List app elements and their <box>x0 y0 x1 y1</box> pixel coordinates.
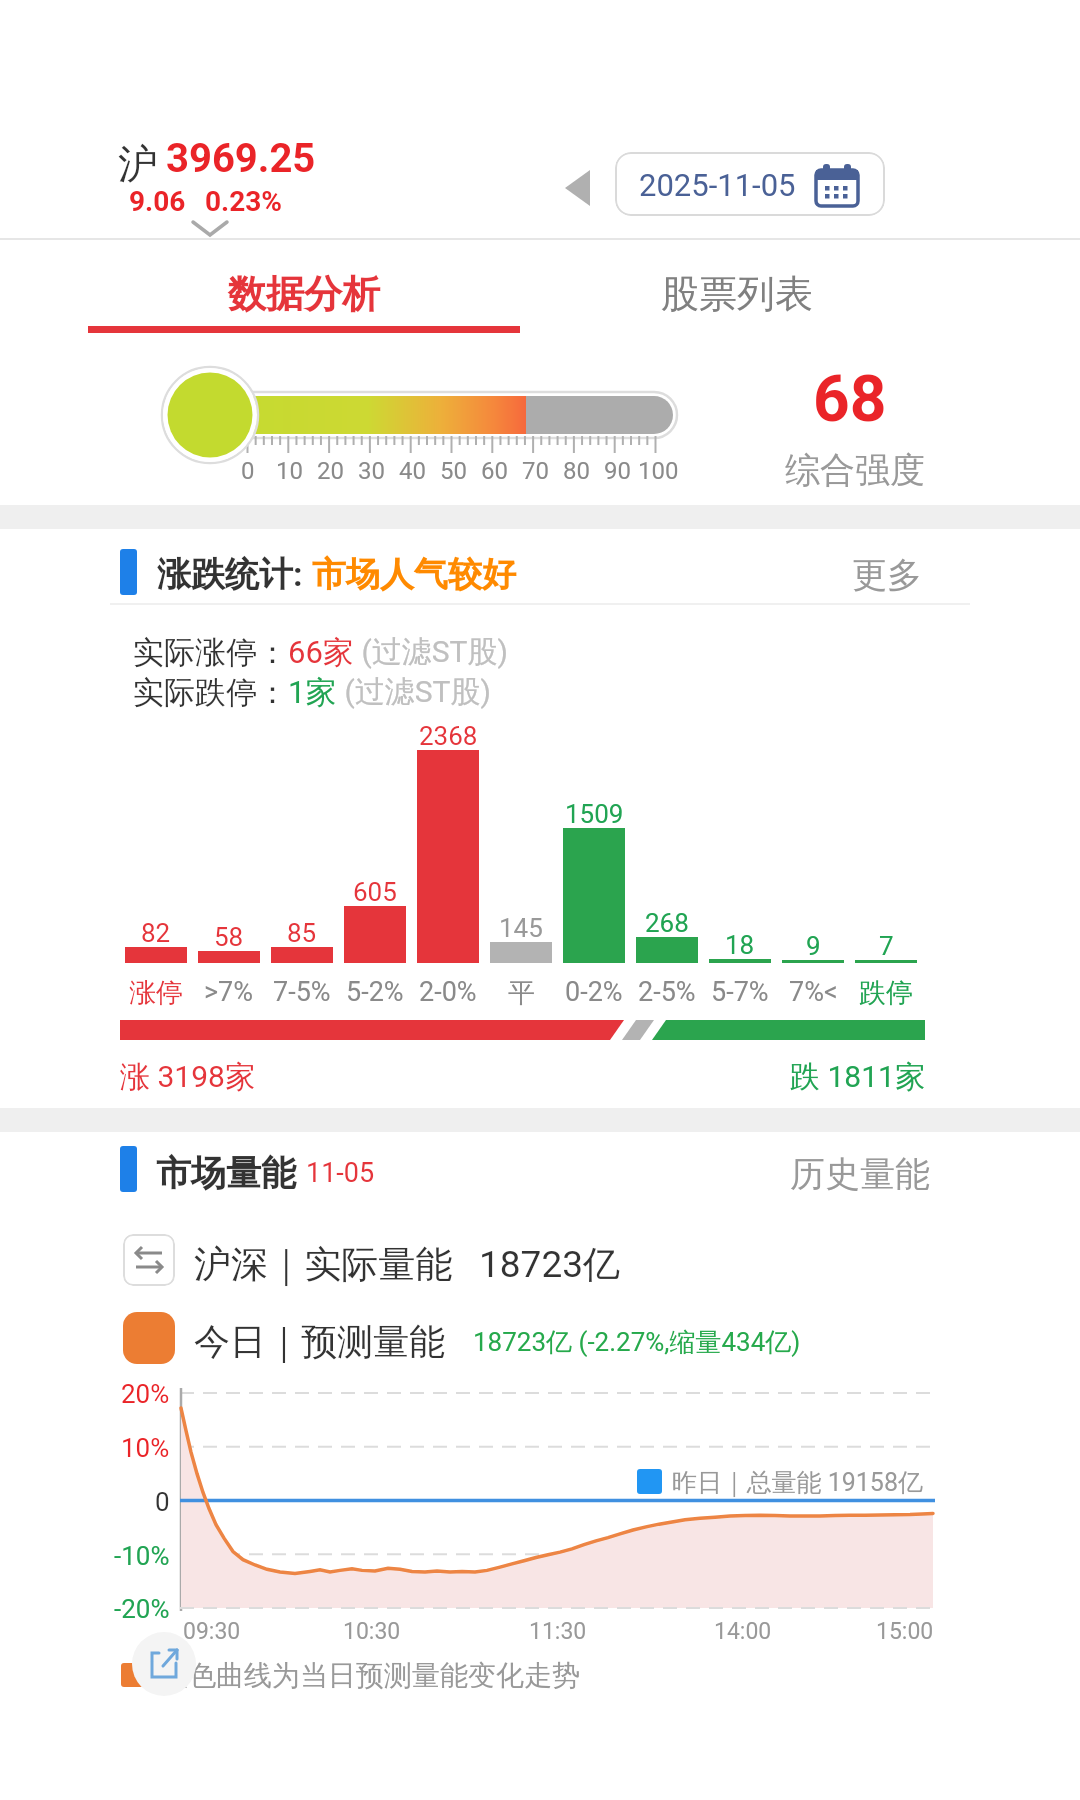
staticText: 40 <box>399 457 426 485</box>
staticText: 7-5% <box>273 976 331 1008</box>
staticText: 100 <box>638 457 679 485</box>
staticText: 60 <box>481 457 508 485</box>
staticText: 7%< <box>789 976 838 1008</box>
staticText: 橙色曲线为当日预测量能变化走势 <box>160 1658 580 1693</box>
staticText: 10 <box>276 457 303 485</box>
staticText: 沪 <box>118 139 158 189</box>
staticText: 市场人气较好 <box>312 553 516 596</box>
staticText: 涨停 <box>129 976 183 1010</box>
staticText: 实际涨停： <box>133 633 288 672</box>
staticText: 90 <box>604 457 631 485</box>
staticText: 58 <box>214 922 244 952</box>
staticText: 85 <box>287 918 317 948</box>
staticText: 5-7% <box>711 976 769 1008</box>
staticText: 80 <box>563 457 590 485</box>
staticText: 1家 <box>288 673 337 712</box>
staticText: 更多 <box>852 553 922 597</box>
button[interactable]: 股票列表 <box>540 240 1080 333</box>
staticText: 0 <box>241 457 255 485</box>
staticText: 11-05 <box>306 1157 375 1189</box>
staticText: 11:30 <box>529 1618 587 1645</box>
staticText: -20% <box>114 1594 170 1624</box>
button[interactable]: 更多 <box>820 540 960 600</box>
staticText: 18723亿 (-2.27%,缩量434亿) <box>473 1326 801 1359</box>
staticText: 3969.25 <box>166 135 316 182</box>
staticText: 68 <box>813 362 887 437</box>
staticText: 30 <box>358 457 385 485</box>
button[interactable]: 数据分析 <box>0 240 540 333</box>
staticText: 605 <box>353 877 397 907</box>
staticText: 66家 <box>288 633 354 672</box>
button[interactable] <box>552 158 604 218</box>
staticText: 综合强度 <box>785 448 925 492</box>
staticText: 市场量能 <box>156 1151 296 1195</box>
staticText: 9.06 <box>129 185 186 218</box>
staticText: 平 <box>508 976 535 1010</box>
button[interactable] <box>108 128 398 246</box>
staticText: 0.23% <box>205 185 283 218</box>
staticText: 涨 3198家 <box>120 1058 255 1096</box>
button[interactable]: 历史量能 <box>760 1140 960 1200</box>
staticText: 18723亿 <box>479 1241 620 1288</box>
staticText: 145 <box>499 913 543 943</box>
button[interactable] <box>123 1234 175 1286</box>
staticText: -10% <box>114 1541 170 1571</box>
staticText: 0-2% <box>565 976 623 1008</box>
staticText: 股票列表 <box>661 270 813 318</box>
staticText: 2025-11-05 <box>639 167 796 203</box>
button[interactable] <box>132 1632 196 1696</box>
staticText: 2368 <box>419 721 478 751</box>
staticText: >7% <box>204 976 254 1008</box>
staticText: 昨日｜总量能 19158亿 <box>672 1467 923 1498</box>
staticText: 20% <box>121 1379 170 1409</box>
staticText: 2-0% <box>419 976 477 1008</box>
staticText: 1509 <box>565 799 624 829</box>
staticText: 0 <box>155 1487 170 1517</box>
staticText: 5-2% <box>346 976 404 1008</box>
staticText: 268 <box>645 908 689 938</box>
staticText: 数据分析 <box>228 270 380 318</box>
staticText: 跌 1811家 <box>790 1058 925 1096</box>
staticText: 20 <box>317 457 344 485</box>
staticText: (过滤ST股) <box>354 633 508 671</box>
staticText: 实际跌停： <box>133 673 288 712</box>
staticText: 2-5% <box>638 976 696 1008</box>
staticText: 沪深｜实际量能 <box>194 1241 453 1288</box>
staticText: 9 <box>806 931 821 961</box>
staticText: 15:00 <box>876 1618 934 1645</box>
staticText: 14:00 <box>714 1618 772 1645</box>
staticText: 7 <box>879 931 894 961</box>
button[interactable] <box>123 1312 175 1364</box>
staticText: 18 <box>725 930 755 960</box>
staticText: 70 <box>522 457 549 485</box>
staticText: 跌停 <box>859 976 913 1010</box>
staticText: 09:30 <box>183 1618 241 1645</box>
staticText: 涨跌统计: <box>157 553 312 596</box>
staticText: 历史量能 <box>790 1152 930 1196</box>
staticText: 今日｜预测量能 <box>194 1319 446 1364</box>
staticText: 82 <box>141 918 171 948</box>
staticText: 50 <box>440 457 467 485</box>
staticText: (过滤ST股) <box>337 673 491 711</box>
staticText: 10:30 <box>343 1618 401 1645</box>
staticText: 10% <box>121 1433 170 1463</box>
button[interactable]: 2025-11-05 <box>615 152 885 216</box>
